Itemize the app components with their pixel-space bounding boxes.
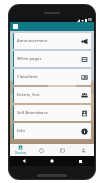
button[interactable]: Home [38, 156, 66, 166]
staticText: Classifieds [17, 74, 81, 80]
button[interactable]: Timer [31, 144, 52, 156]
staticText: 10 [88, 18, 92, 22]
button[interactable]: Classifieds [13, 69, 91, 85]
staticText: Directory [15, 151, 27, 155]
button[interactable]: Announcement [13, 33, 91, 49]
button[interactable]: Profile [73, 144, 94, 156]
staticText: Announcement [17, 38, 81, 44]
button[interactable]: Directory [10, 144, 31, 156]
button[interactable]: Info [13, 123, 91, 139]
staticText: Self Attendance [17, 110, 81, 116]
staticText: Events, fest [17, 92, 81, 98]
button[interactable]: Gallery [52, 144, 73, 156]
staticText: White pages [17, 56, 81, 62]
button[interactable]: Events, fest [13, 87, 91, 103]
button[interactable]: Recent apps [66, 156, 94, 166]
staticText: Info [17, 128, 81, 134]
button[interactable]: Self Attendance [13, 105, 91, 121]
button[interactable]: Back [10, 156, 38, 166]
button[interactable]: White pages [13, 51, 91, 67]
